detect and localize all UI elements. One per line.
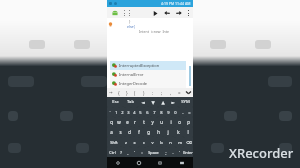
- button[interactable]: ◄: [138, 97, 148, 107]
- button[interactable]: ,: [166, 88, 175, 97]
- button[interactable]: 1: [113, 107, 119, 117]
- button[interactable]: r: [131, 117, 139, 127]
- staticText: ': [134, 150, 135, 155]
- button[interactable]: Keyboard: [171, 157, 193, 168]
- button[interactable]: Recents: [149, 157, 171, 168]
- button[interactable]: Home: [128, 157, 149, 168]
- button[interactable]: m: [175, 137, 184, 147]
- button[interactable]: {: [115, 88, 123, 97]
- button[interactable]: (: [131, 88, 139, 97]
- button[interactable]: 6: [144, 107, 151, 117]
- button[interactable]: Tab: [123, 97, 138, 107]
- button[interactable]: z: [121, 137, 130, 147]
- button[interactable]: k: [173, 127, 183, 137]
- button[interactable]: →: [107, 88, 115, 97]
- staticText: e: [126, 119, 129, 125]
- button[interactable]: Redo: [175, 9, 183, 17]
- button[interactable]: j: [163, 127, 173, 137]
- button[interactable]: u: [157, 117, 166, 127]
- button[interactable]: d: [125, 127, 134, 137]
- button[interactable]: 7: [151, 107, 158, 117]
- button[interactable]: Ctrl: [107, 147, 117, 157]
- button[interactable]: SYM: [178, 97, 193, 107]
- button[interactable]: n: [166, 137, 175, 147]
- button[interactable]: ': [176, 147, 183, 157]
- button[interactable]: ,: [124, 147, 131, 157]
- button[interactable]: 5: [137, 107, 144, 117]
- button[interactable]: =: [186, 107, 193, 117]
- button[interactable]: -: [179, 107, 186, 117]
- button[interactable]: =: [175, 88, 184, 97]
- button[interactable]: c: [139, 137, 148, 147]
- staticText: IntegerDecode: [119, 81, 148, 86]
- button[interactable]: :: [138, 147, 145, 157]
- button[interactable]: 0: [172, 107, 179, 117]
- staticText: ): [143, 90, 145, 96]
- button[interactable]: t: [139, 117, 148, 127]
- button[interactable]: Quick fix: [108, 22, 113, 27]
- button[interactable]: InterruptedException: [110, 61, 186, 70]
- button[interactable]: Menu: [127, 9, 132, 17]
- staticText: h: [157, 129, 160, 135]
- button[interactable]: ;: [157, 88, 166, 97]
- staticText: ◄: [141, 100, 145, 105]
- staticText: ⌫: [186, 140, 192, 145]
- button[interactable]: o: [175, 117, 184, 127]
- button[interactable]: b: [157, 137, 166, 147]
- button[interactable]: `: [107, 107, 113, 117]
- button[interactable]: Android Studio: [110, 8, 119, 17]
- staticText: :: [141, 150, 143, 155]
- button[interactable]: l: [183, 127, 193, 137]
- button[interactable]: IntegerDecode: [110, 79, 186, 88]
- staticText: k: [177, 129, 180, 135]
- button[interactable]: w: [115, 117, 123, 127]
- button[interactable]: }: [123, 88, 131, 97]
- button[interactable]: XRecorder watermark: [229, 144, 294, 162]
- button[interactable]: p: [184, 117, 193, 127]
- button[interactable]: Hide suggestions: [184, 88, 193, 97]
- button[interactable]: :: [148, 88, 157, 97]
- button[interactable]: InternalError: [110, 70, 186, 79]
- button[interactable]: ▼: [148, 97, 158, 107]
- button[interactable]: ▲: [158, 97, 168, 107]
- button[interactable]: ⌫: [184, 137, 193, 147]
- staticText: Intent i=new Inte: [139, 29, 169, 34]
- button[interactable]: 4: [131, 107, 137, 117]
- staticText: ': [179, 150, 180, 155]
- button[interactable]: Shft: [107, 137, 121, 147]
- button[interactable]: v: [148, 137, 157, 147]
- staticText: 5: [139, 110, 142, 115]
- button[interactable]: Enter: [183, 147, 193, 157]
- button[interactable]: f: [134, 127, 143, 137]
- staticText: q: [110, 119, 113, 125]
- button[interactable]: 3: [125, 107, 131, 117]
- button[interactable]: .: [169, 147, 176, 157]
- staticText: 3: [127, 110, 130, 115]
- button[interactable]: i: [166, 117, 175, 127]
- button[interactable]: More options: [186, 9, 191, 17]
- button[interactable]: a: [107, 127, 116, 137]
- button[interactable]: ►: [168, 97, 178, 107]
- button[interactable]: Esc: [107, 97, 123, 107]
- button[interactable]: g: [143, 127, 153, 137]
- button[interactable]: h: [153, 127, 163, 137]
- button[interactable]: Run: [151, 9, 159, 17]
- button[interactable]: e: [123, 117, 131, 127]
- button[interactable]: y: [148, 117, 157, 127]
- button[interactable]: Undo: [163, 9, 171, 17]
- button[interactable]: 9: [165, 107, 172, 117]
- button[interactable]: ': [131, 147, 138, 157]
- button[interactable]: q: [107, 117, 115, 127]
- button[interactable]: ;: [162, 147, 169, 157]
- button[interactable]: ?: [117, 147, 124, 157]
- button[interactable]: s: [116, 127, 125, 137]
- staticText: ,: [127, 150, 129, 155]
- button[interactable]: 2: [119, 107, 125, 117]
- button[interactable]: Back: [107, 157, 128, 168]
- staticText: j: [167, 129, 169, 135]
- button[interactable]: ): [139, 88, 148, 97]
- button[interactable]: 8: [158, 107, 165, 117]
- button[interactable]: x: [130, 137, 139, 147]
- button[interactable]: Space: [145, 147, 162, 157]
- button[interactable]: Menu: [122, 9, 127, 17]
